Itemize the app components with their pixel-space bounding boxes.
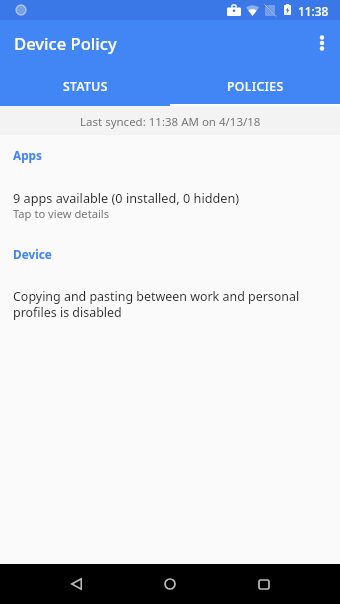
staticText: 11:38 xyxy=(298,3,329,19)
button[interactable]: POLICIES xyxy=(170,67,340,105)
staticText: Copying and pasting between work and per… xyxy=(13,288,327,321)
button[interactable]: STATUS xyxy=(0,67,170,105)
staticText: POLICIES xyxy=(227,78,284,95)
staticText: Tap to view details xyxy=(13,206,110,221)
button[interactable]: Back xyxy=(55,564,97,604)
button[interactable]: Recents xyxy=(243,564,285,604)
button[interactable]: More options xyxy=(301,22,340,64)
staticText: 9 apps available (0 installed, 0 hidden) xyxy=(13,189,240,206)
staticText: STATUS xyxy=(63,78,108,95)
staticText: Device Policy xyxy=(14,32,117,55)
staticText: Last synced: 11:38 AM on 4/13/18 xyxy=(80,114,261,130)
staticText: Device xyxy=(13,246,52,262)
button[interactable]: Home xyxy=(149,564,191,604)
button[interactable]: 9 apps available (0 installed, 0 hidden) xyxy=(0,189,340,221)
staticText: Apps xyxy=(13,147,42,163)
